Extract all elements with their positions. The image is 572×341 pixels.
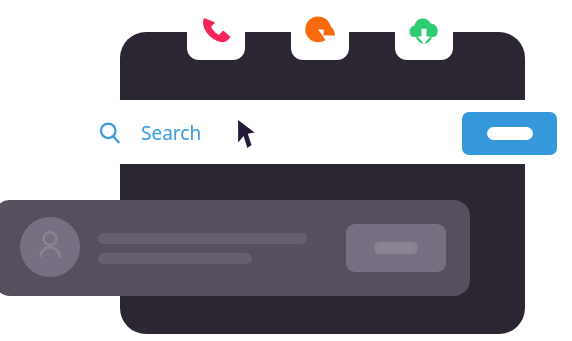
button[interactable]: Reports	[291, 0, 349, 60]
button[interactable]	[0, 200, 470, 296]
button[interactable]	[462, 112, 557, 155]
staticText: Search	[141, 120, 202, 146]
button[interactable]: Download	[395, 0, 453, 60]
button[interactable]	[120, 32, 525, 334]
button[interactable]	[74, 100, 568, 164]
button[interactable]: Call	[187, 0, 245, 60]
other: Search	[99, 122, 121, 144]
button[interactable]	[346, 224, 446, 272]
